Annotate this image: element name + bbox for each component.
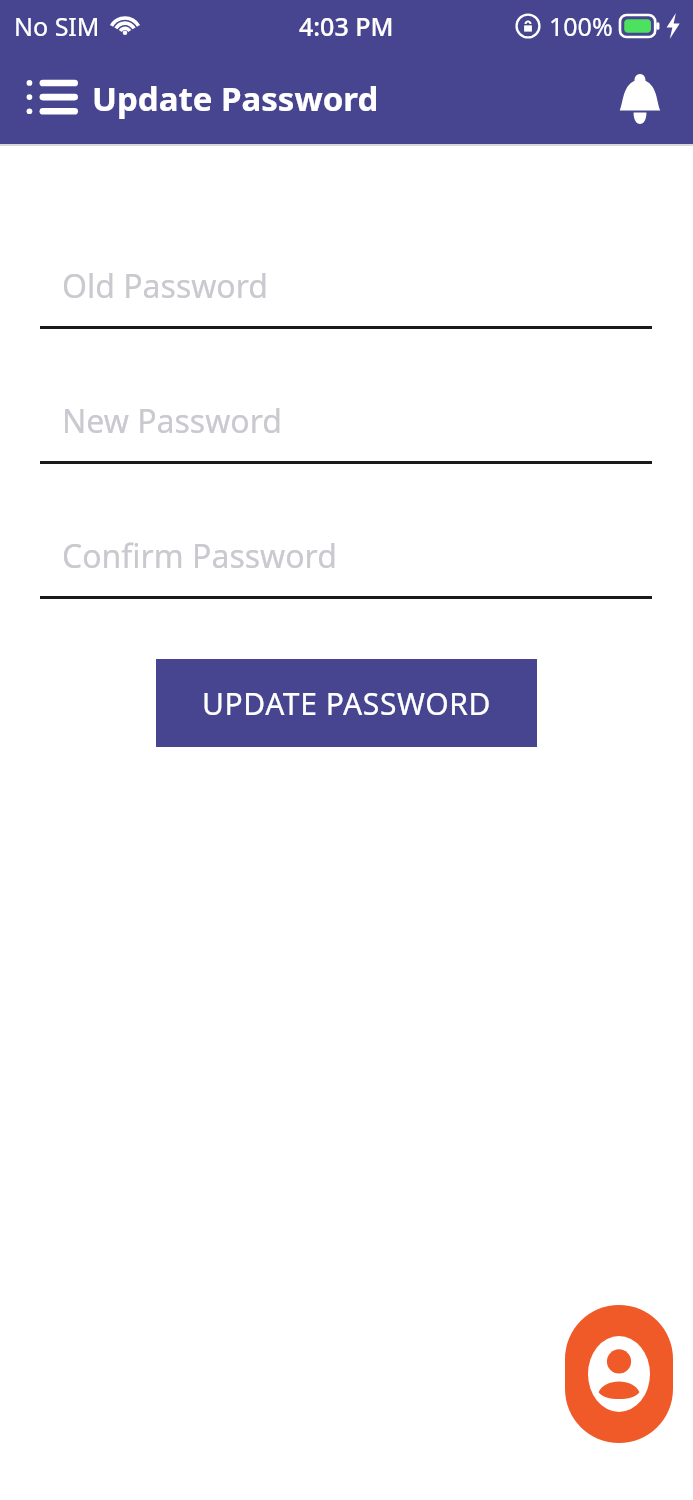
staticText: New Password — [62, 399, 282, 443]
button[interactable]: New Password — [40, 381, 652, 464]
staticText: 100% — [549, 9, 613, 43]
other: Menu — [26, 75, 78, 121]
button[interactable]: UPDATE PASSWORD — [156, 659, 537, 747]
button[interactable]: Confirm Password — [40, 516, 652, 599]
staticText: Confirm Password — [62, 534, 337, 578]
staticText: Update Password — [92, 76, 379, 121]
button[interactable]: Menu — [0, 67, 393, 129]
staticText: Old Password — [62, 264, 268, 308]
staticText: 4:03 PM — [299, 9, 394, 43]
staticText: No SIM — [14, 9, 100, 43]
button[interactable]: Notifications — [609, 64, 671, 132]
button[interactable]: Old Password — [40, 246, 652, 329]
button[interactable]: Account — [565, 1305, 673, 1443]
staticText: UPDATE PASSWORD — [202, 683, 491, 724]
